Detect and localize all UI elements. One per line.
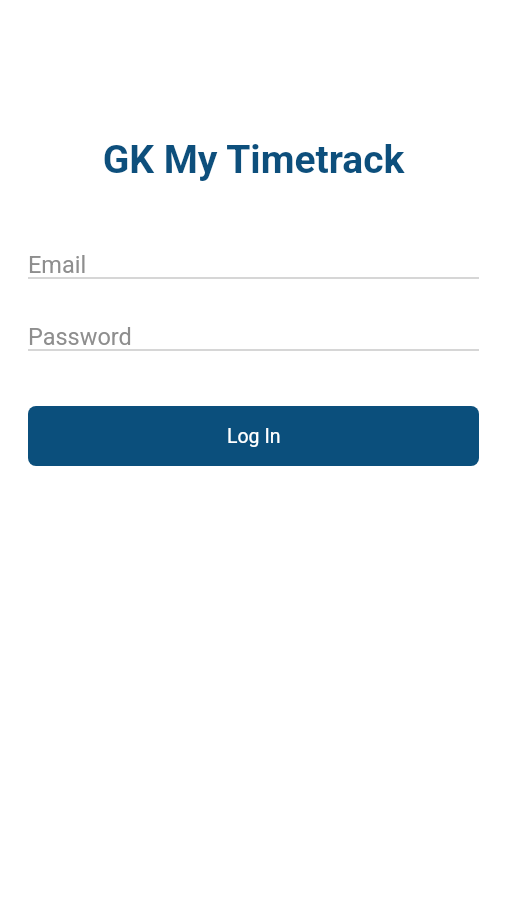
- staticText: Log In: [227, 425, 281, 448]
- staticText: Password: [28, 323, 132, 351]
- staticText: Email: [28, 251, 87, 279]
- button[interactable]: Password: [28, 323, 479, 351]
- button[interactable]: Email: [28, 251, 479, 279]
- staticText: GK My Timetrack: [0, 137, 507, 183]
- button[interactable]: Log In: [28, 406, 479, 466]
